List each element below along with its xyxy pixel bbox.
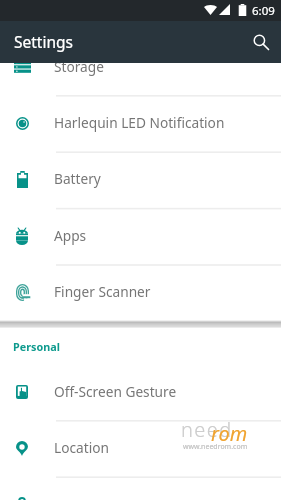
staticText: Finger Scanner bbox=[54, 282, 151, 301]
staticText: Settings bbox=[14, 31, 73, 52]
button[interactable]: Storage bbox=[0, 39, 281, 95]
staticText: Apps bbox=[54, 226, 87, 245]
button[interactable]: Finger Scanner bbox=[0, 264, 281, 320]
staticText: Personal bbox=[13, 339, 60, 354]
staticText: Location bbox=[54, 438, 109, 457]
button[interactable]: Location bbox=[0, 420, 281, 476]
staticText: 6:09 bbox=[252, 3, 275, 19]
button[interactable]: Harlequin LED Notification bbox=[0, 95, 281, 151]
button[interactable]: Off-Screen Gesture bbox=[0, 364, 281, 420]
button[interactable]: Apps bbox=[0, 208, 281, 264]
staticText: need bbox=[181, 416, 233, 443]
button[interactable]: Battery bbox=[0, 151, 281, 207]
button[interactable]: Search bbox=[248, 27, 274, 57]
staticText: Storage bbox=[54, 57, 104, 76]
staticText: www.needrom.com bbox=[183, 442, 248, 452]
staticText: Harlequin LED Notification bbox=[54, 113, 225, 132]
staticText: Battery bbox=[54, 169, 101, 188]
button[interactable]: Security bbox=[0, 476, 281, 500]
staticText: rom bbox=[211, 420, 248, 447]
staticText: Off-Screen Gesture bbox=[54, 382, 177, 401]
